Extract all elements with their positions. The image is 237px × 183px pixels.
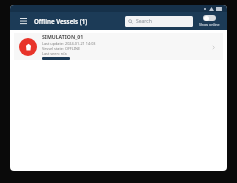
staticText: Show online — [199, 22, 220, 27]
staticText: Vessel state: OFFLINE — [42, 46, 81, 51]
staticText: SIMULATION_01 — [42, 33, 84, 40]
staticText: Offline Vessels (1) — [34, 17, 88, 25]
staticText: Last update: 2024-01-21 14:03 — [42, 41, 96, 46]
button[interactable]: SIMULATION_01 — [14, 33, 223, 60]
button[interactable]: Search — [125, 16, 193, 27]
staticText: Search — [136, 18, 152, 25]
button[interactable]: Show online toggle — [199, 15, 220, 27]
button[interactable]: Open navigation menu — [17, 15, 29, 27]
button[interactable]: Open vessel details — [208, 42, 218, 52]
staticText: Last seen: n/a — [42, 51, 67, 56]
